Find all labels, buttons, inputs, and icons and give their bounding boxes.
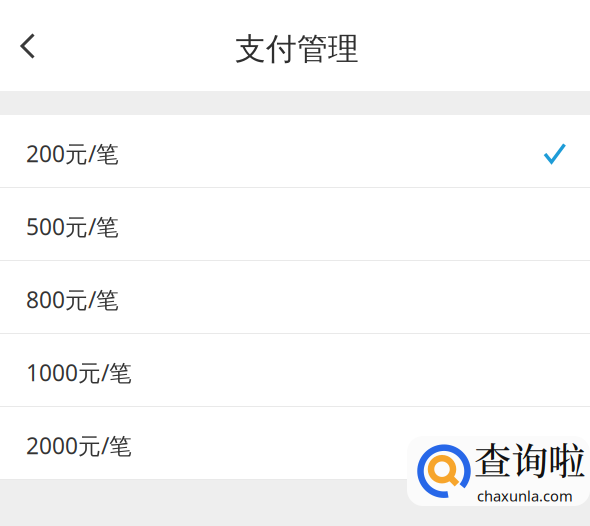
button[interactable]: 800元/笔 [0, 261, 590, 334]
button[interactable]: 2000元/笔 [0, 407, 590, 480]
button[interactable]: Back [0, 0, 56, 91]
button[interactable]: 500元/笔 [0, 188, 590, 261]
staticText: 查询啦 [474, 432, 585, 486]
staticText: 200元/笔 [26, 138, 119, 169]
staticText: 800元/笔 [26, 284, 119, 315]
staticText: 支付管理 [235, 30, 359, 68]
staticText: 500元/笔 [26, 211, 119, 242]
staticText: 1000元/笔 [26, 357, 132, 388]
staticText: 2000元/笔 [26, 430, 132, 461]
staticText: chaxunla.com [477, 486, 573, 506]
button[interactable]: 200元/笔 [0, 115, 590, 188]
button[interactable]: 1000元/笔 [0, 334, 590, 407]
